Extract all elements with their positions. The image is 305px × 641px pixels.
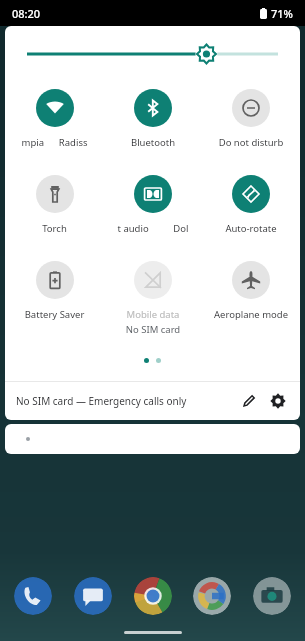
- button[interactable]: Camera: [253, 577, 291, 615]
- staticText: Battery Saver: [6, 308, 103, 321]
- staticText: Aeroplane mode: [203, 308, 299, 321]
- staticText: t audio Dol: [105, 222, 201, 235]
- button[interactable]: Phone: [14, 577, 52, 615]
- button[interactable]: Brightness: [27, 42, 278, 66]
- staticText: Do not disturb: [203, 136, 299, 149]
- staticText: 08:20: [12, 6, 41, 21]
- button[interactable]: Edit tiles: [234, 387, 262, 415]
- button[interactable]: Bluetooth: [104, 89, 202, 149]
- button[interactable]: Aeroplane mode: [202, 261, 300, 321]
- button[interactable]: t audio Dol: [104, 175, 202, 235]
- staticText: mpia Radiss: [6, 136, 103, 149]
- staticText: Bluetooth: [105, 136, 201, 149]
- staticText: 71%: [271, 6, 293, 21]
- button[interactable]: mpia Radiss: [5, 89, 104, 149]
- button[interactable]: Chrome: [134, 577, 172, 615]
- staticText: Mobile data: [105, 308, 201, 321]
- button[interactable]: Settings: [264, 387, 292, 415]
- button[interactable]: Google: [193, 577, 231, 615]
- button[interactable]: [5, 424, 300, 454]
- staticText: Auto-rotate: [203, 222, 299, 235]
- staticText: Torch: [6, 222, 103, 235]
- button[interactable]: No SIM card — Emergency calls only: [16, 394, 230, 408]
- button[interactable]: Do not disturb: [202, 89, 300, 149]
- button[interactable]: Torch: [5, 175, 104, 235]
- button[interactable]: Mobile data: [104, 261, 202, 336]
- button[interactable]: Auto-rotate: [202, 175, 300, 235]
- button[interactable]: Battery Saver: [5, 261, 104, 321]
- staticText: No SIM card: [104, 323, 202, 336]
- button[interactable]: Messages: [74, 577, 112, 615]
